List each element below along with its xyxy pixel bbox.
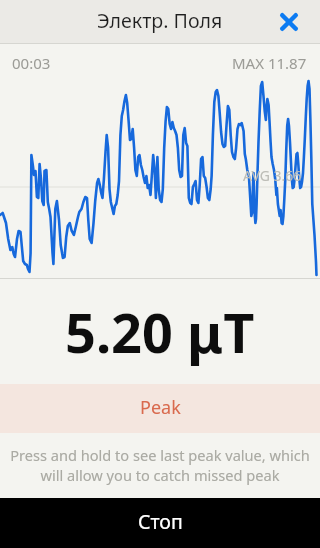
button[interactable]: Close [268,1,310,43]
staticText: 00:03 [12,53,51,73]
staticText: Peak [140,395,181,420]
button[interactable]: Стоп [0,498,320,548]
staticText: 5.20 μT [65,295,255,369]
staticText: MAX 11.87 [232,53,307,73]
staticText: Стоп [138,508,183,535]
button[interactable]: Peak [0,384,320,433]
staticText: AVG 3.66 [243,166,302,185]
staticText: Электр. Поля [97,7,223,34]
staticText: Press and hold to see last peak value, w… [6,445,314,486]
